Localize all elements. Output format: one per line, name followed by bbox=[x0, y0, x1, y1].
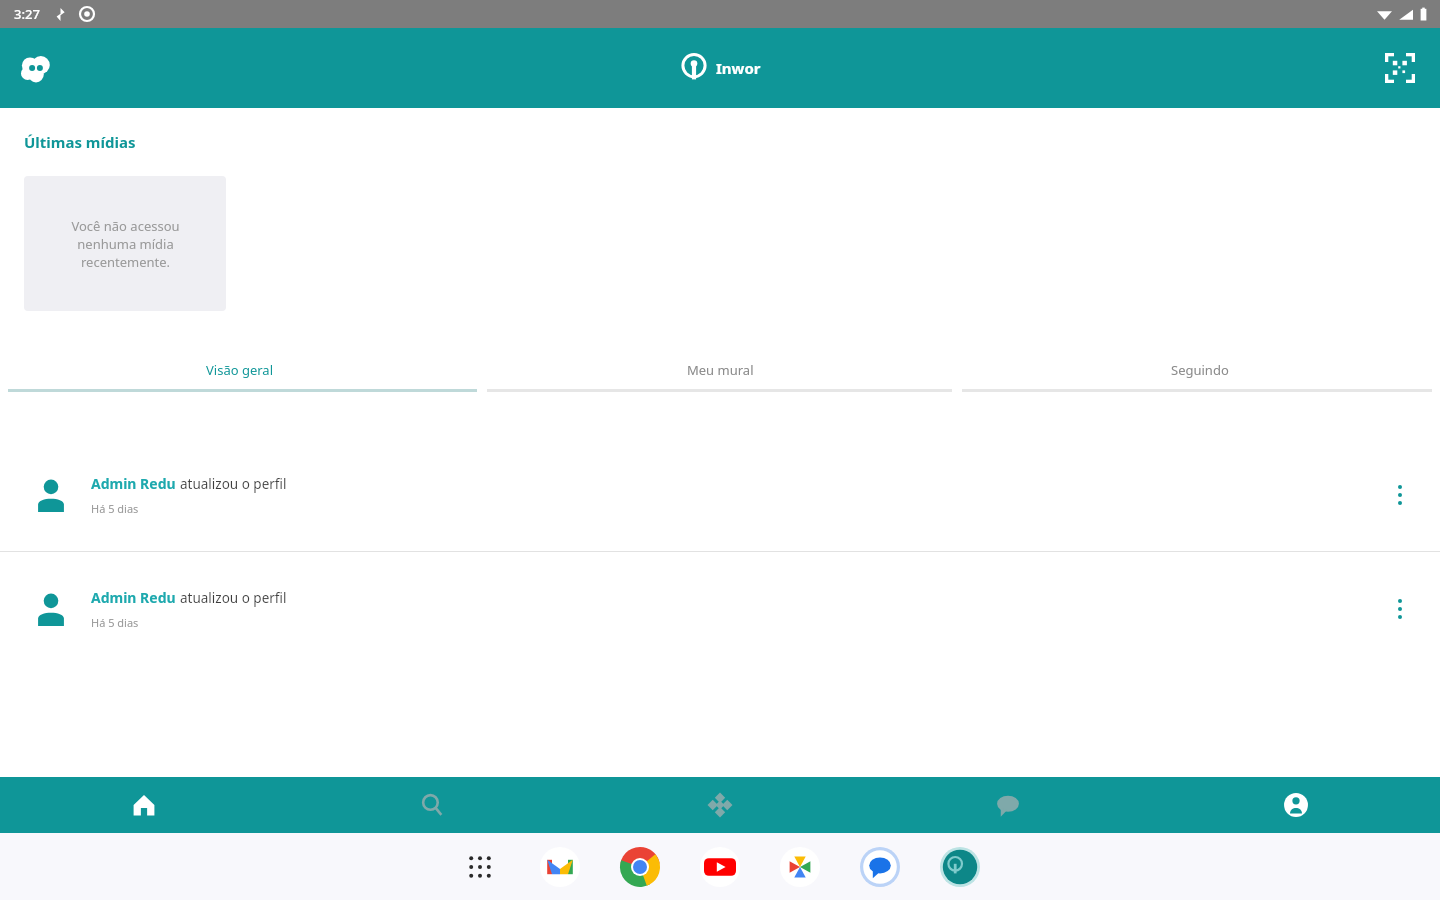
staticText: Admin Redu bbox=[91, 474, 176, 493]
button[interactable]: Visão geral bbox=[0, 351, 480, 389]
staticText: Últimas mídias bbox=[24, 132, 136, 152]
button[interactable]: YouTube bbox=[696, 843, 744, 891]
button[interactable]: Você não acessou nenhuma mídia recenteme… bbox=[24, 176, 226, 311]
button[interactable]: Search bbox=[288, 777, 576, 833]
staticText: atualizou o perfil bbox=[180, 589, 287, 607]
staticText: Inwor bbox=[716, 58, 761, 78]
button[interactable]: Gmail bbox=[536, 843, 584, 891]
button[interactable]: More options bbox=[1378, 587, 1422, 631]
staticText: Meu mural bbox=[687, 361, 754, 379]
button[interactable]: Messages bbox=[864, 777, 1152, 833]
button[interactable]: Explore bbox=[576, 777, 864, 833]
staticText: Admin Redu bbox=[91, 588, 176, 607]
button[interactable]: Home bbox=[0, 777, 288, 833]
staticText: Visão geral bbox=[206, 361, 274, 379]
button[interactable]: Seguindo bbox=[960, 351, 1440, 389]
button[interactable]: Menu bbox=[10, 42, 62, 94]
staticText: Há 5 dias bbox=[91, 501, 139, 516]
button[interactable]: Admin Redu bbox=[0, 552, 1440, 665]
button[interactable]: Inwor bbox=[673, 49, 767, 87]
button[interactable]: Profile bbox=[1152, 777, 1440, 833]
button[interactable]: Messages bbox=[856, 843, 904, 891]
staticText: 3:27 bbox=[14, 5, 40, 23]
staticText: Seguindo bbox=[1171, 361, 1229, 379]
button[interactable]: Chrome bbox=[616, 843, 664, 891]
staticText: Você não acessou nenhuma mídia recenteme… bbox=[71, 217, 180, 271]
button[interactable]: Meu mural bbox=[480, 351, 960, 389]
button[interactable]: Inwor bbox=[936, 843, 984, 891]
button[interactable]: Photos bbox=[776, 843, 824, 891]
button[interactable]: Admin Redu bbox=[0, 438, 1440, 551]
button[interactable]: Scan QR code bbox=[1374, 42, 1426, 94]
button[interactable]: More options bbox=[1378, 473, 1422, 517]
staticText: atualizou o perfil bbox=[180, 475, 287, 493]
button[interactable]: All apps bbox=[456, 843, 504, 891]
staticText: Há 5 dias bbox=[91, 615, 139, 630]
